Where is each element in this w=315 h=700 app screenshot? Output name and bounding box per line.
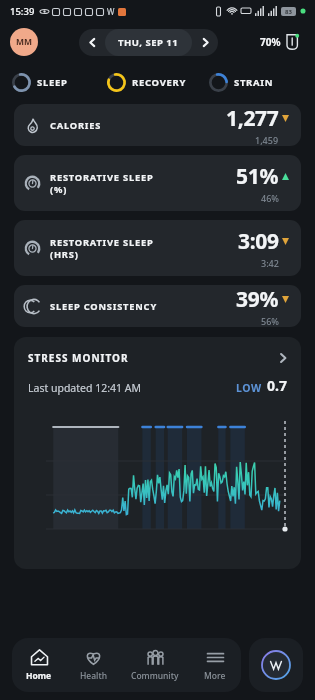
staticText: 46% xyxy=(261,192,279,204)
button[interactable]: Device battery xyxy=(260,32,305,52)
staticText: MM xyxy=(16,36,33,48)
button[interactable]: SLEEP xyxy=(12,73,107,92)
staticText: 0.7 xyxy=(267,376,287,395)
staticText: SLEEP xyxy=(37,76,68,89)
staticText: THU, SEP 11 xyxy=(118,36,179,49)
button[interactable]: SLEEP CONSISTENCY xyxy=(14,285,301,327)
staticText: STRAIN xyxy=(234,76,274,89)
staticText: 83 xyxy=(285,8,292,16)
staticText: Health xyxy=(80,670,107,682)
button[interactable]: RESTORATIVE SLEEP (HRS) xyxy=(14,220,301,276)
staticText: RESTORATIVE SLEEP (HRS) xyxy=(50,236,154,261)
button[interactable]: Whoop device xyxy=(249,638,303,692)
staticText: Community xyxy=(131,670,179,682)
staticText: CALORIES xyxy=(50,119,102,132)
button[interactable]: Profile xyxy=(10,28,38,56)
button[interactable]: STRAIN xyxy=(209,73,303,92)
staticText: 70% xyxy=(260,35,281,49)
staticText: 56% xyxy=(261,315,279,327)
button[interactable]: STRESS MONITOR xyxy=(14,337,301,569)
button[interactable]: Health xyxy=(66,638,121,692)
staticText: LOW xyxy=(236,381,262,395)
staticText: SLEEP CONSISTENCY xyxy=(50,300,157,313)
staticText: W xyxy=(107,6,115,17)
staticText: 51% xyxy=(236,162,279,191)
button[interactable]: More xyxy=(189,638,241,692)
button[interactable]: RESTORATIVE SLEEP (%) xyxy=(14,155,301,211)
staticText: 3:42 xyxy=(261,257,279,269)
button[interactable]: CALORIES xyxy=(14,104,301,146)
staticText: 1,277 xyxy=(226,104,279,133)
button[interactable]: Previous day xyxy=(79,29,105,56)
staticText: 39% xyxy=(236,285,279,314)
staticText: Last updated 12:41 AM xyxy=(28,381,141,395)
staticText: More xyxy=(204,670,226,682)
button[interactable]: Community xyxy=(121,638,189,692)
staticText: STRESS MONITOR xyxy=(28,351,129,365)
staticText: Home xyxy=(26,670,52,682)
staticText: RESTORATIVE SLEEP (%) xyxy=(50,171,154,196)
staticText: 15:39 xyxy=(10,5,35,18)
button[interactable]: RECOVERY xyxy=(107,73,209,92)
button[interactable]: Home xyxy=(12,638,66,692)
button[interactable]: Next day xyxy=(192,29,218,56)
staticText: 3:09 xyxy=(238,227,279,256)
staticText: RECOVERY xyxy=(132,76,187,89)
button[interactable]: THU, SEP 11 xyxy=(118,29,179,56)
staticText: 1,459 xyxy=(255,134,279,146)
